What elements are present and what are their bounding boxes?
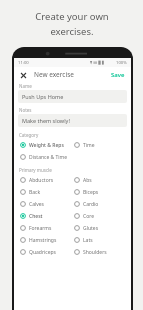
button[interactable]: Glutes (72, 222, 127, 234)
staticText: Hamstrings (29, 237, 57, 244)
staticText: Make them slowly! (22, 117, 70, 124)
staticText: Primary muscle (19, 167, 52, 173)
button[interactable]: Weight & Reps (18, 139, 72, 151)
button[interactable]: Lats (72, 234, 127, 246)
button[interactable]: Save (109, 69, 127, 81)
button[interactable]: Back (18, 186, 72, 198)
button[interactable]: Abductors (18, 174, 72, 186)
staticText: New exercise (34, 70, 74, 79)
button[interactable]: Push Ups Home (18, 90, 127, 103)
button[interactable]: Chest (18, 210, 72, 222)
button[interactable]: Close (18, 70, 28, 80)
button[interactable]: Core (72, 210, 127, 222)
staticText: Biceps (83, 189, 99, 196)
staticText: Save (111, 71, 125, 79)
staticText: Abductors (29, 177, 54, 184)
staticText: 100% (116, 60, 127, 66)
button[interactable]: Abs (72, 174, 127, 186)
staticText: Core (83, 213, 94, 220)
staticText: Forearms (29, 225, 52, 232)
staticText: Category (19, 132, 39, 138)
button[interactable]: Time (72, 139, 127, 151)
staticText: Create your own (35, 10, 109, 23)
staticText: Calves (29, 201, 45, 208)
staticText: Time (83, 142, 95, 149)
staticText: Abs (83, 177, 92, 184)
staticText: 11:00 (18, 60, 29, 66)
button[interactable]: Biceps (72, 186, 127, 198)
button[interactable]: Forearms (18, 222, 72, 234)
button[interactable]: Calves (18, 198, 72, 210)
button[interactable]: Quadriceps (18, 246, 72, 258)
staticText: Push Ups Home (22, 93, 64, 100)
staticText: Notes (19, 107, 32, 113)
staticText: exercises. (50, 25, 94, 38)
staticText: Glutes (83, 225, 99, 232)
button[interactable]: Shoulders (72, 246, 127, 258)
button[interactable]: Distance & Time (18, 151, 72, 163)
staticText: Weight & Reps (29, 142, 64, 149)
staticText: Back (29, 189, 41, 196)
staticText: Cardio (83, 201, 99, 208)
staticText: Distance & Time (29, 154, 68, 161)
staticText: Quadriceps (29, 249, 56, 256)
staticText: Name (19, 83, 32, 89)
button[interactable]: Make them slowly! (18, 114, 127, 127)
staticText: Lats (83, 237, 93, 244)
staticText: Shoulders (83, 249, 107, 256)
button[interactable]: Hamstrings (18, 234, 72, 246)
button[interactable]: Cardio (72, 198, 127, 210)
staticText: Chest (29, 213, 43, 220)
